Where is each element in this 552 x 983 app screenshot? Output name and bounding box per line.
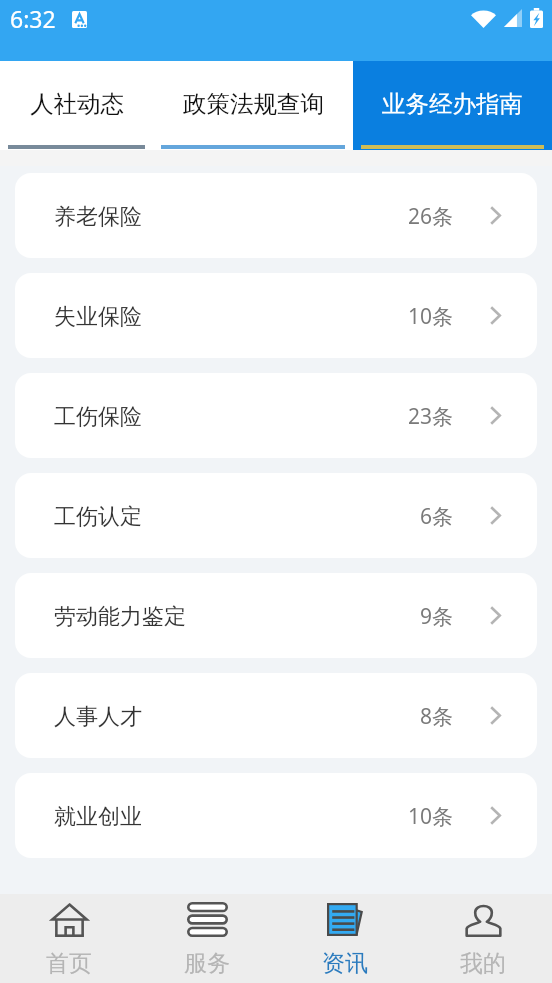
button[interactable]: 失业保险: [15, 273, 537, 358]
staticText: 6:32: [10, 3, 56, 34]
staticText: 工伤认定: [54, 503, 142, 531]
staticText: 8条: [420, 702, 454, 731]
staticText: 23条: [408, 402, 454, 431]
staticText: 人社动态: [30, 89, 124, 119]
button[interactable]: 我的: [414, 894, 552, 983]
other: 首页: [51, 902, 88, 937]
staticText: 首页: [46, 949, 92, 978]
staticText: 劳动能力鉴定: [54, 603, 186, 631]
button[interactable]: 人事人才: [15, 673, 537, 758]
button[interactable]: 资讯: [276, 894, 414, 983]
other: 资讯: [327, 903, 363, 936]
staticText: 养老保险: [54, 203, 142, 231]
staticText: 人事人才: [54, 703, 142, 731]
staticText: 10条: [408, 802, 454, 831]
button[interactable]: 业务经办指南: [353, 61, 552, 150]
staticText: 26条: [408, 202, 454, 231]
staticText: 9条: [420, 602, 454, 631]
button[interactable]: 政策法规查询: [153, 61, 353, 150]
staticText: 服务: [184, 949, 230, 978]
staticText: 业务经办指南: [382, 89, 523, 119]
staticText: 政策法规查询: [183, 89, 324, 119]
staticText: 失业保险: [54, 303, 142, 331]
other: 服务: [187, 902, 228, 937]
button[interactable]: 首页: [0, 894, 138, 983]
staticText: 就业创业: [54, 803, 142, 831]
button[interactable]: 劳动能力鉴定: [15, 573, 537, 658]
button[interactable]: 人社动态: [0, 61, 153, 150]
button[interactable]: 养老保险: [15, 173, 537, 258]
button[interactable]: 就业创业: [15, 773, 537, 858]
staticText: 资讯: [322, 949, 368, 978]
other: 我的: [465, 902, 502, 937]
button[interactable]: 工伤认定: [15, 473, 537, 558]
staticText: 我的: [460, 949, 506, 978]
staticText: 10条: [408, 302, 454, 331]
button[interactable]: 工伤保险: [15, 373, 537, 458]
staticText: 工伤保险: [54, 403, 142, 431]
staticText: 6条: [420, 502, 454, 531]
button[interactable]: 服务: [138, 894, 276, 983]
